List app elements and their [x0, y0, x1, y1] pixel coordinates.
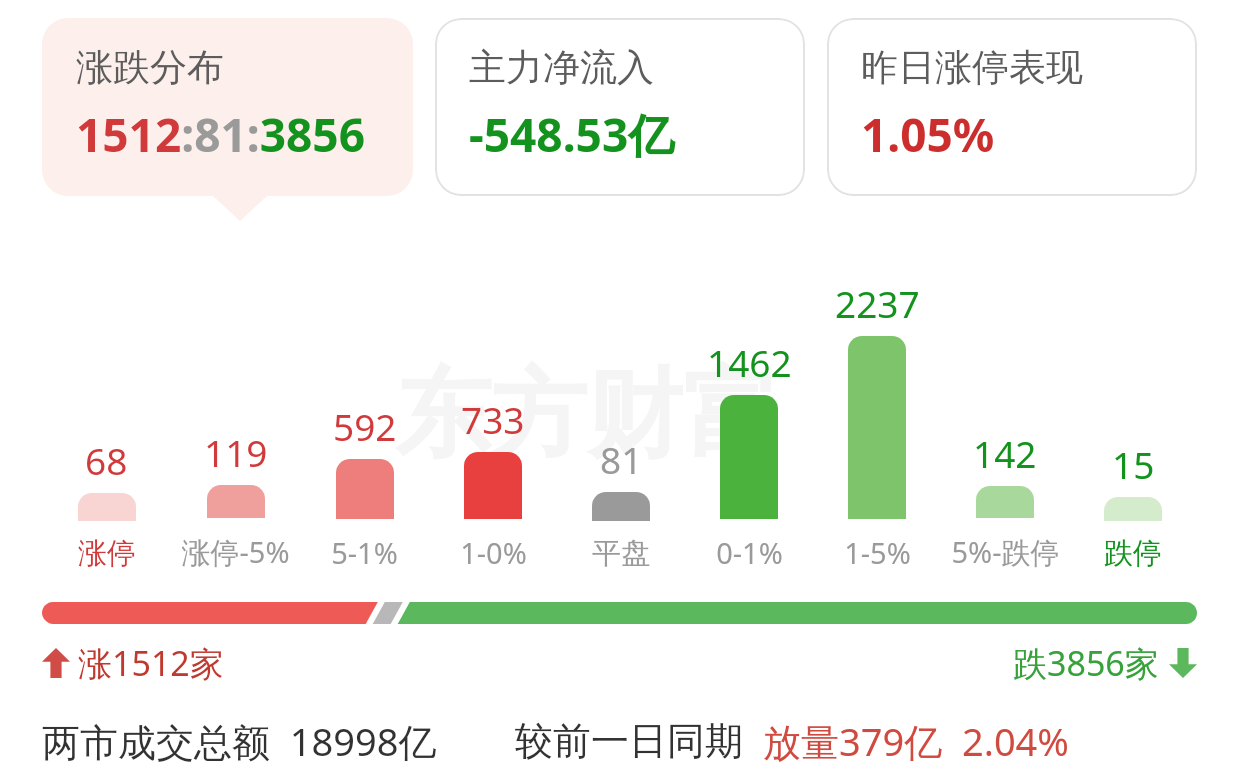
staticText: 放量379亿 2.04% [763, 715, 1069, 767]
button[interactable]: 昨日涨停表现 [827, 18, 1197, 196]
staticText: 昨日涨停表现 [861, 44, 1083, 91]
staticText: 跌停 [1104, 535, 1162, 572]
button[interactable]: 1462 [685, 337, 813, 572]
staticText: 1-0% [460, 533, 527, 572]
staticText: 5-1% [331, 533, 398, 572]
staticText: 142 [973, 428, 1037, 478]
other: Falling [1169, 648, 1197, 678]
button[interactable]: 主力净流入 [435, 18, 805, 196]
staticText: 1462 [707, 337, 792, 387]
staticText: 跌3856家 [1013, 640, 1159, 686]
staticText: 主力净流入 [469, 44, 654, 91]
staticText: 733 [461, 394, 525, 444]
staticText: 涨停 [78, 535, 136, 572]
button[interactable]: 733 [429, 394, 557, 572]
staticText: 15 [1112, 439, 1155, 489]
staticText: 涨跌分布 [76, 44, 224, 91]
button[interactable]: 15 [1069, 439, 1197, 572]
other: Rising [42, 648, 70, 678]
button[interactable]: Rising [42, 640, 224, 686]
button[interactable]: 592 [300, 401, 429, 572]
staticText: 68 [85, 435, 128, 485]
staticText: 2237 [835, 278, 920, 328]
staticText: 5%-跌停 [951, 532, 1060, 572]
staticText: 两市成交总额 18998亿 [42, 715, 437, 767]
button[interactable]: 68 [42, 435, 171, 572]
staticText: 81 [600, 434, 643, 484]
staticText: 东方财富 [395, 355, 779, 476]
button[interactable]: 2237 [813, 278, 941, 572]
staticText: 涨1512家 [78, 640, 224, 686]
staticText: 平盘 [592, 535, 650, 572]
button[interactable]: 119 [171, 427, 300, 572]
button[interactable] [42, 602, 1197, 624]
staticText: 1-5% [844, 533, 911, 572]
button[interactable]: 81 [557, 434, 685, 572]
button[interactable]: 跌3856家 [1013, 640, 1197, 686]
button[interactable]: 142 [941, 428, 1069, 572]
staticText: 1512:81:3856 [76, 103, 365, 166]
staticText: 119 [204, 427, 268, 477]
staticText: 1.05% [861, 103, 995, 166]
staticText: 涨停-5% [181, 532, 290, 572]
staticText: 0-1% [716, 533, 783, 572]
staticText: -548.53亿 [469, 103, 675, 166]
staticText: 较前一日同期 [515, 717, 743, 765]
button[interactable]: 涨跌分布 [42, 18, 413, 196]
staticText: 592 [333, 401, 397, 451]
